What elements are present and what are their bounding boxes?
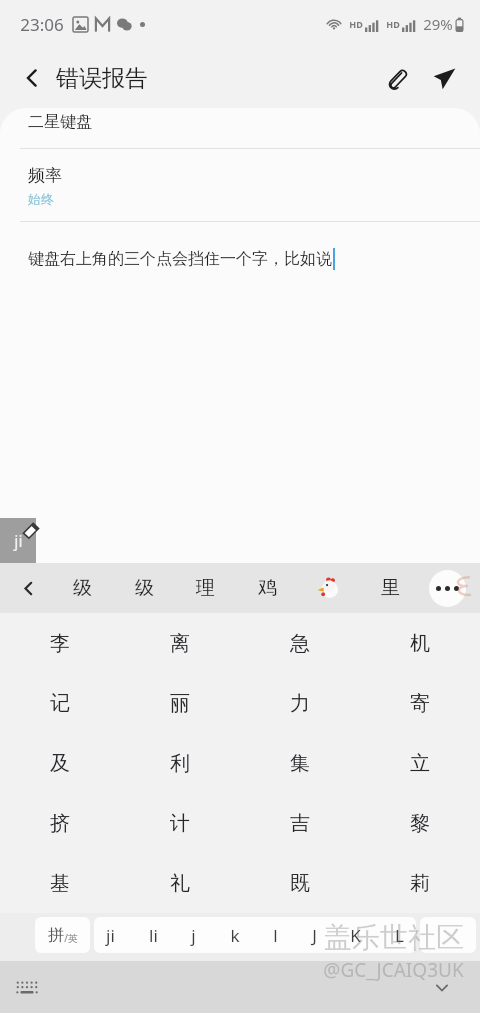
staticText: 错误报告: [56, 64, 148, 93]
button[interactable]: Enter: [420, 917, 476, 953]
staticText: ji: [106, 924, 115, 947]
staticText: HD: [386, 18, 400, 30]
staticText: 始终: [28, 191, 54, 207]
staticText: ji: [14, 530, 23, 552]
staticText: 键盘右上角的三个点会挡住一个字，比如说: [28, 249, 332, 269]
staticText: 里: [381, 576, 400, 600]
button[interactable]: 频率: [0, 149, 480, 221]
staticText: 既: [290, 871, 310, 896]
button[interactable]: 李: [0, 613, 120, 673]
staticText: 级: [135, 576, 154, 600]
button[interactable]: 级: [118, 563, 170, 613]
staticText: 频率: [28, 165, 62, 186]
staticText: L: [395, 924, 404, 947]
staticText: 鸡: [258, 576, 277, 600]
staticText: 机: [410, 631, 430, 656]
staticText: l: [273, 924, 278, 947]
staticText: j: [191, 924, 196, 947]
staticText: 吉: [290, 811, 310, 836]
staticText: 二星键盘: [28, 112, 92, 132]
staticText: K: [350, 924, 361, 947]
staticText: 盖乐世社区: [324, 920, 464, 955]
button[interactable]: 吉: [240, 793, 360, 853]
button[interactable]: 利: [120, 733, 240, 793]
other: Edit pinyin: [22, 522, 40, 540]
button[interactable]: Hide keyboard: [16, 980, 38, 995]
staticText: 力: [290, 691, 310, 716]
staticText: 及: [50, 751, 70, 776]
button[interactable]: 集: [240, 733, 360, 793]
staticText: 寄: [410, 691, 430, 716]
staticText: J: [312, 924, 317, 947]
staticText: 李: [50, 631, 70, 656]
button[interactable]: 寄: [360, 673, 480, 733]
staticText: 29%: [423, 14, 453, 34]
button[interactable]: 级: [56, 563, 108, 613]
button[interactable]: 力: [240, 673, 360, 733]
button[interactable]: Back: [8, 54, 56, 102]
button[interactable]: 莉: [360, 853, 480, 913]
button[interactable]: 黎: [360, 793, 480, 853]
staticText: 黎: [410, 811, 430, 836]
staticText: 计: [170, 811, 190, 836]
staticText: 离: [170, 631, 190, 656]
button[interactable]: More options: [429, 570, 466, 607]
button[interactable]: Previous: [0, 563, 56, 613]
button[interactable]: 丽: [120, 673, 240, 733]
staticText: k: [230, 924, 240, 947]
staticText: 急: [290, 631, 310, 656]
button[interactable]: 挤: [0, 793, 120, 853]
staticText: 礼: [170, 871, 190, 896]
button[interactable]: Attach file: [372, 54, 420, 102]
staticText: 利: [170, 751, 190, 776]
staticText: /英: [64, 931, 78, 945]
staticText: 基: [50, 871, 70, 896]
staticText: 级: [73, 576, 92, 600]
staticText: @GC_JCAIQ3UK: [323, 957, 464, 983]
staticText: 理: [196, 576, 215, 600]
button[interactable]: 礼: [120, 853, 240, 913]
button[interactable]: 基: [0, 853, 120, 913]
button[interactable]: 离: [120, 613, 240, 673]
staticText: li: [149, 924, 158, 947]
button[interactable]: 理: [179, 563, 231, 613]
staticText: 拼: [48, 925, 64, 945]
staticText: 集: [290, 751, 310, 776]
staticText: 23:06: [20, 13, 64, 36]
staticText: 莉: [410, 871, 430, 896]
button[interactable]: 计: [120, 793, 240, 853]
staticText: 记: [50, 691, 70, 716]
staticText: HD: [349, 18, 363, 30]
staticText: 立: [410, 751, 430, 776]
button[interactable]: 二星键盘: [0, 112, 480, 148]
button[interactable]: 既: [240, 853, 360, 913]
button[interactable]: 立: [360, 733, 480, 793]
button[interactable]: 里: [364, 563, 416, 613]
staticText: 挤: [50, 811, 70, 836]
button[interactable]: Send: [420, 54, 468, 102]
button[interactable]: 机: [360, 613, 480, 673]
button[interactable]: Chicken emoji: [302, 563, 354, 613]
button[interactable]: 记: [0, 673, 120, 733]
staticText: 丽: [170, 691, 190, 716]
button[interactable]: 及: [0, 733, 120, 793]
button[interactable]: ji: [0, 518, 36, 563]
button[interactable]: 鸡: [241, 563, 293, 613]
button[interactable]: ji: [94, 917, 416, 953]
button[interactable]: 拼: [35, 917, 90, 953]
button[interactable]: 急: [240, 613, 360, 673]
